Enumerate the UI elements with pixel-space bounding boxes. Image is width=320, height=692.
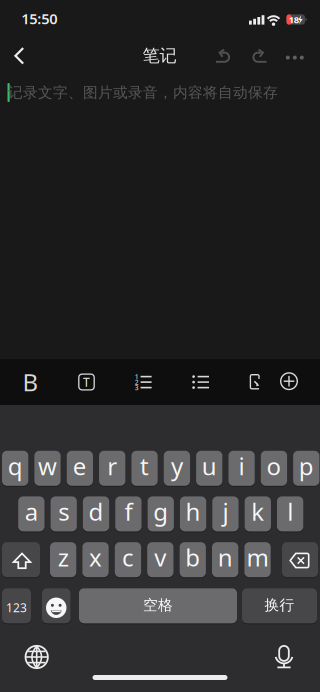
staticText: y <box>171 450 183 482</box>
button[interactable] <box>262 635 306 679</box>
staticText: z <box>58 541 69 573</box>
staticText: 1 <box>135 372 139 381</box>
button[interactable] <box>179 360 223 404</box>
staticText: p <box>299 450 314 482</box>
button[interactable]: m <box>244 542 271 577</box>
button[interactable]: s <box>50 496 77 531</box>
button[interactable]: o <box>261 451 287 486</box>
staticText: 换行 <box>264 596 294 614</box>
staticText: g <box>153 496 168 527</box>
staticText: c <box>122 541 134 573</box>
staticText: T <box>83 374 90 390</box>
button[interactable]: e <box>67 451 93 486</box>
staticText: 2 <box>135 378 139 387</box>
button[interactable] <box>209 42 239 72</box>
staticText: l <box>287 496 293 527</box>
button[interactable]: v <box>147 542 173 577</box>
button[interactable]: c <box>115 542 141 577</box>
staticText: 18 <box>289 13 299 26</box>
button[interactable] <box>15 635 59 679</box>
button[interactable] <box>2 39 36 73</box>
staticText: 记录文字、图片或录音，内容将自动保存 <box>8 84 278 102</box>
button[interactable]: 换行 <box>242 588 317 623</box>
button[interactable] <box>233 360 277 404</box>
staticText: i <box>239 450 245 482</box>
staticText: 空格 <box>143 596 173 614</box>
button[interactable]: r <box>99 451 125 486</box>
staticText: m <box>246 541 268 573</box>
button[interactable]: t <box>131 451 158 486</box>
button[interactable] <box>267 359 311 403</box>
button[interactable]: b <box>180 542 206 577</box>
staticText: w <box>38 450 57 482</box>
staticText: 笔记 <box>142 45 176 66</box>
staticText: r <box>107 450 117 482</box>
staticText: x <box>89 541 102 573</box>
button[interactable]: d <box>83 496 109 531</box>
staticText: h <box>186 496 201 527</box>
staticText: u <box>202 450 217 482</box>
button[interactable]: u <box>196 451 222 486</box>
staticText: B <box>23 366 39 398</box>
button[interactable] <box>2 542 40 577</box>
staticText: t <box>140 450 149 482</box>
button[interactable]: w <box>34 451 61 486</box>
button[interactable]: q <box>2 451 28 486</box>
button[interactable]: i <box>228 451 255 486</box>
button[interactable]: x <box>82 542 109 577</box>
button[interactable]: a <box>18 496 44 531</box>
button[interactable]: f <box>115 496 141 531</box>
button[interactable] <box>280 42 310 72</box>
button[interactable]: T <box>64 360 108 404</box>
staticText: j <box>222 496 228 527</box>
staticText: q <box>8 450 23 482</box>
staticText: v <box>154 541 166 573</box>
button[interactable]: g <box>148 496 174 531</box>
staticText: k <box>251 496 264 527</box>
staticText: f <box>124 496 132 527</box>
staticText: b <box>185 541 200 573</box>
staticText: 3 <box>135 383 139 392</box>
button[interactable]: 空格 <box>79 588 237 623</box>
staticText: a <box>25 496 38 527</box>
staticText: 15:50 <box>21 9 57 28</box>
button[interactable]: p <box>293 451 319 486</box>
button[interactable]: h <box>180 496 206 531</box>
staticText: 123 <box>6 600 27 615</box>
button[interactable]: n <box>212 542 238 577</box>
button[interactable]: 1 <box>121 360 165 404</box>
staticText: n <box>218 541 233 573</box>
button[interactable] <box>282 542 318 577</box>
button[interactable]: B <box>9 360 53 404</box>
staticText: e <box>73 450 87 482</box>
button[interactable] <box>243 42 273 72</box>
staticText: d <box>89 496 104 527</box>
button[interactable]: y <box>164 451 190 486</box>
button[interactable]: 123 <box>2 588 31 623</box>
button[interactable]: z <box>50 542 76 577</box>
button[interactable] <box>42 588 70 623</box>
button[interactable]: l <box>277 496 303 531</box>
button[interactable]: k <box>245 496 271 531</box>
button[interactable]: j <box>212 496 239 531</box>
staticText: s <box>58 496 69 527</box>
staticText: o <box>266 450 281 482</box>
